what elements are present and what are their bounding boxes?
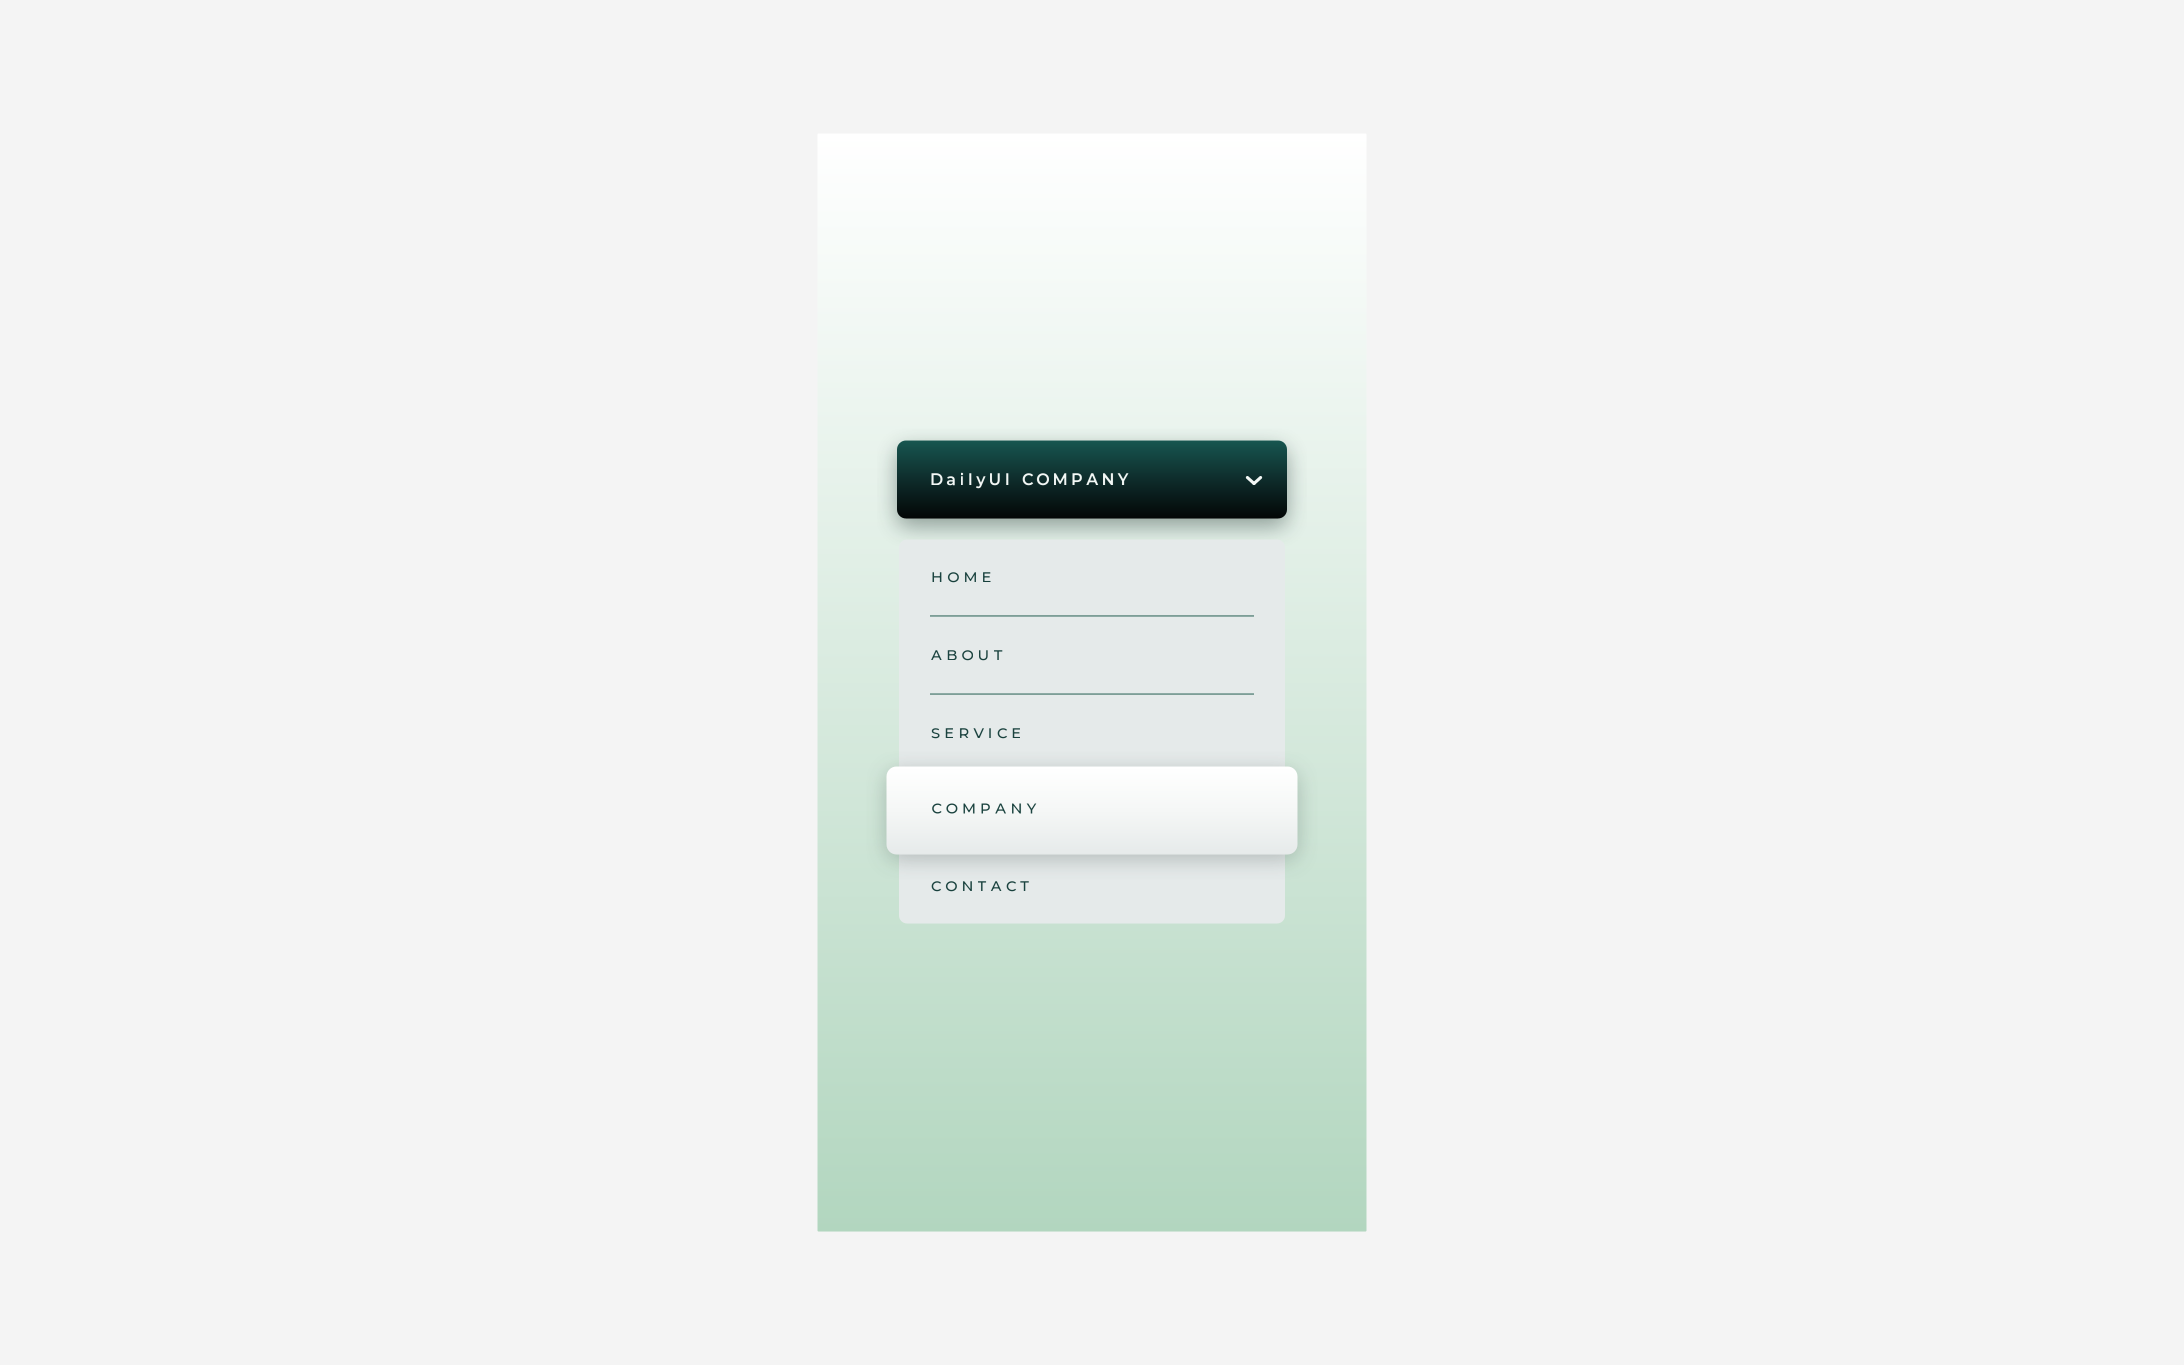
staticText: A	[991, 877, 1002, 895]
staticText: M	[962, 799, 976, 817]
staticText: O	[945, 877, 957, 895]
staticText: O	[947, 568, 959, 586]
staticText: O	[945, 801, 957, 819]
staticText: A	[995, 801, 1006, 819]
staticText: H	[931, 568, 943, 586]
staticText: D	[930, 470, 943, 489]
staticText: C	[931, 799, 941, 817]
staticText: O	[961, 646, 973, 664]
button[interactable]: H	[899, 539, 1285, 615]
staticText: C	[931, 801, 941, 819]
button[interactable]: D	[897, 440, 1287, 518]
staticText: P	[980, 801, 991, 819]
staticText: T	[978, 877, 987, 895]
staticText: y	[976, 470, 985, 489]
staticText: T	[994, 646, 1003, 664]
staticText: T	[1020, 877, 1029, 895]
staticText: N	[1101, 470, 1114, 489]
staticText: M	[963, 568, 977, 586]
staticText: N	[1010, 801, 1022, 819]
staticText: C	[997, 724, 1007, 742]
staticText: P	[980, 799, 991, 817]
staticText: I	[1005, 470, 1010, 489]
staticText: E	[944, 724, 954, 742]
staticText: N	[1010, 799, 1022, 817]
staticText: U	[988, 470, 1001, 489]
staticText: Y	[1118, 470, 1129, 489]
button[interactable]: C	[899, 771, 1285, 848]
staticText: U	[978, 646, 990, 664]
staticText: l	[968, 470, 973, 489]
staticText: O	[1036, 470, 1049, 489]
staticText: C	[1006, 877, 1016, 895]
staticText: Y	[1027, 799, 1036, 817]
staticText: B	[946, 646, 957, 664]
staticText: Y	[1026, 801, 1035, 819]
button[interactable]: S	[899, 695, 1285, 771]
button[interactable]: A	[899, 617, 1285, 693]
staticText: A	[931, 646, 942, 664]
staticText: C	[1022, 470, 1033, 489]
staticText: V	[974, 724, 984, 742]
button[interactable]: C	[886, 766, 1297, 854]
button[interactable]: C	[899, 848, 1285, 924]
staticText: A	[1086, 470, 1098, 489]
staticText: O	[946, 799, 958, 817]
staticText: E	[1011, 724, 1021, 742]
staticText: E	[982, 568, 992, 586]
staticText: M	[1053, 470, 1068, 489]
staticText: N	[961, 877, 973, 895]
staticText: i	[960, 470, 965, 489]
staticText: P	[1071, 470, 1083, 489]
staticText: M	[961, 801, 975, 819]
staticText: S	[931, 724, 940, 742]
staticText: A	[995, 799, 1006, 817]
staticText: I	[988, 724, 993, 742]
staticText: C	[931, 877, 941, 895]
staticText: a	[946, 470, 956, 489]
staticText: R	[958, 724, 969, 742]
